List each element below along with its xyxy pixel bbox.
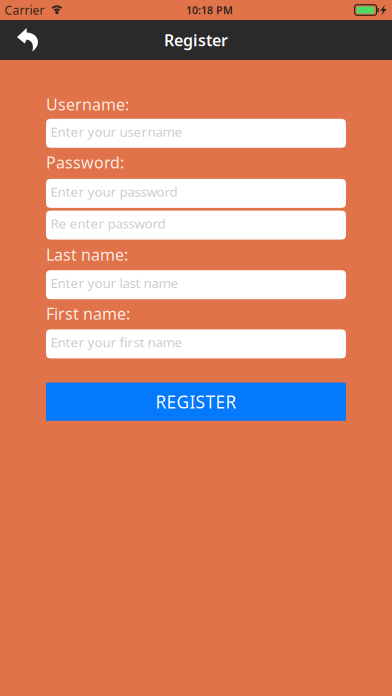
staticText: Username:	[46, 94, 129, 115]
staticText: Carrier	[4, 2, 44, 18]
staticText: Enter your first name	[50, 333, 182, 351]
staticText: Enter your username	[50, 123, 182, 140]
staticText: Enter your password	[50, 183, 177, 200]
button[interactable]: Back	[0, 20, 52, 60]
staticText: Last name:	[46, 244, 128, 265]
staticText: Enter your last name	[50, 274, 178, 292]
staticText: REGISTER	[155, 390, 236, 413]
staticText: Password:	[46, 152, 124, 173]
staticText: 10:18 PM	[186, 3, 233, 17]
staticText: First name:	[46, 303, 130, 324]
staticText: Re enter password	[50, 214, 165, 232]
button[interactable]: REGISTER	[46, 383, 346, 421]
staticText: Register	[164, 29, 228, 51]
